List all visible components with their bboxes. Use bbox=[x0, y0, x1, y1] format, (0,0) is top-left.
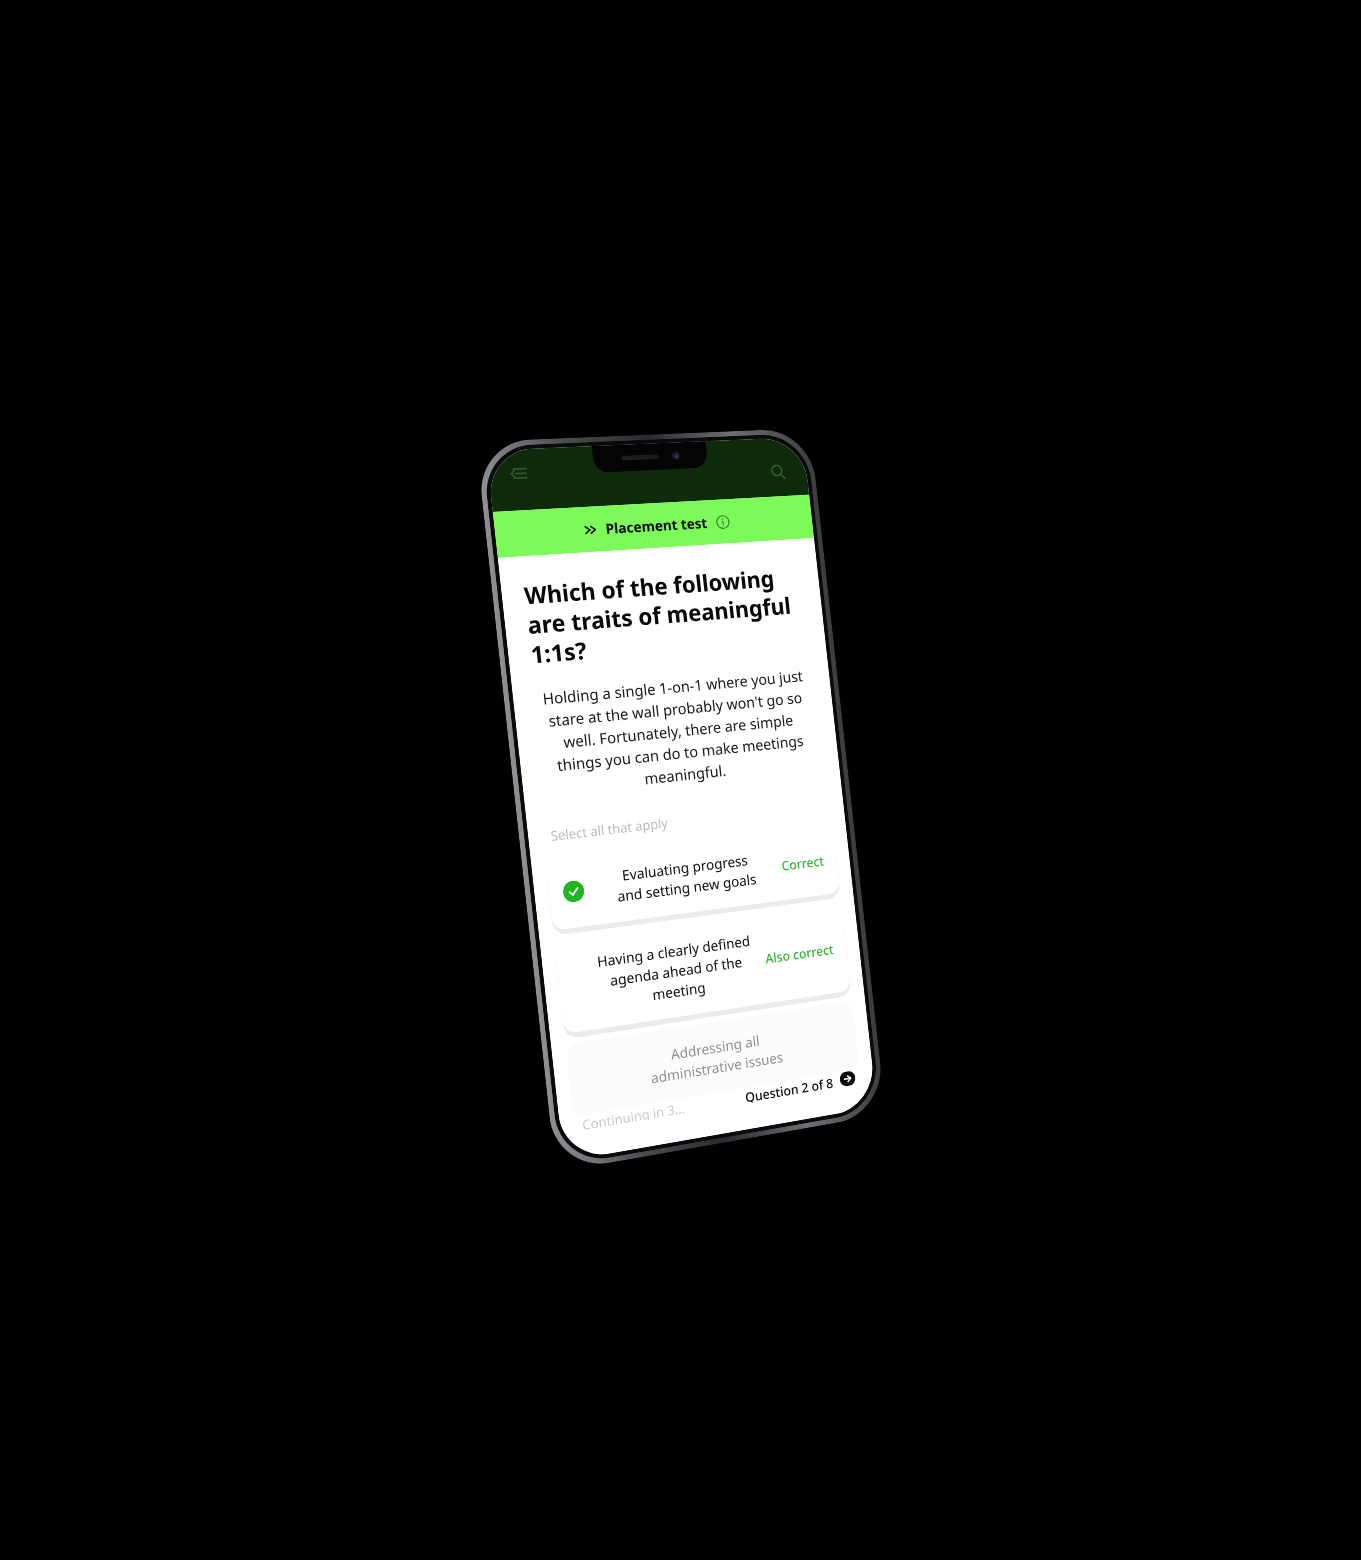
staticText: Which of the following are traits of mea… bbox=[523, 561, 806, 671]
staticText: Having a clearly defined agenda ahead of… bbox=[588, 930, 763, 1013]
staticText: Question 2 of 8 bbox=[744, 1074, 834, 1103]
button[interactable]: Having a clearly defined agenda ahead of… bbox=[554, 902, 851, 1034]
staticText: Holding a single 1-on-1 where you just s… bbox=[537, 665, 818, 800]
button[interactable]: Question 2 of 8 bbox=[744, 1070, 856, 1103]
staticText: Also correct bbox=[764, 940, 835, 968]
staticText: Placement test bbox=[604, 513, 709, 538]
staticText: Correct bbox=[781, 852, 825, 875]
staticText: Evaluating progress and setting new goal… bbox=[592, 847, 778, 909]
button[interactable]: Menu bbox=[503, 459, 533, 487]
button[interactable]: Evaluating progress and setting new goal… bbox=[545, 824, 840, 931]
staticText: Select all that apply bbox=[550, 813, 669, 845]
staticText: Continuing in 3... bbox=[581, 1099, 686, 1131]
button[interactable]: Addressing all administrative issues bbox=[565, 1000, 860, 1117]
staticText: Addressing all administrative issues bbox=[599, 1020, 829, 1095]
button[interactable]: Placement test bbox=[493, 495, 814, 558]
button[interactable]: Search bbox=[765, 459, 791, 485]
button[interactable]: Info bbox=[714, 514, 731, 530]
